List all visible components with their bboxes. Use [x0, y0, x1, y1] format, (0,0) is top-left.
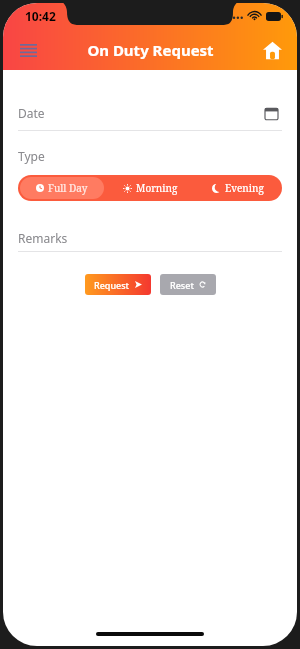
staticText: Reset	[170, 279, 194, 291]
button[interactable]: Request	[85, 274, 151, 295]
staticText: 10:42	[25, 8, 56, 24]
staticText: Remarks	[18, 230, 68, 246]
staticText: Evening	[225, 181, 264, 195]
staticText: Date	[18, 105, 45, 121]
button[interactable]: Evening	[194, 175, 282, 201]
button[interactable]: Date	[18, 96, 282, 130]
staticText: On Duty Request	[87, 40, 214, 60]
staticText: Type	[18, 148, 45, 164]
staticText: Request	[94, 279, 130, 291]
staticText: Full Day	[48, 181, 88, 195]
staticText: Morning	[136, 181, 178, 195]
button[interactable]: Reset	[160, 274, 216, 295]
button[interactable]: Menu	[13, 35, 43, 65]
button[interactable]: Home	[257, 35, 287, 65]
button[interactable]: Remarks	[18, 225, 282, 251]
button[interactable]: Full Day	[20, 177, 104, 199]
button[interactable]: Morning	[106, 175, 194, 201]
